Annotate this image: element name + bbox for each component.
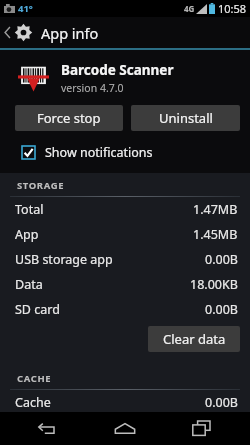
staticText: 0.00B <box>205 394 238 408</box>
button[interactable]: Home <box>96 412 154 445</box>
staticText: 4G <box>184 3 195 14</box>
button[interactable]: Clear data <box>148 326 240 352</box>
button[interactable]: SD card <box>0 297 250 322</box>
staticText: CACHE <box>17 372 52 385</box>
button[interactable]: Uninstall <box>131 105 240 131</box>
staticText: 10:58 <box>218 1 247 16</box>
button[interactable]: Recent apps <box>173 412 231 445</box>
staticText: 18.00KB <box>190 276 238 293</box>
button[interactable]: Show notifications <box>0 142 250 163</box>
staticText: Barcode Scanner <box>61 61 174 79</box>
button[interactable]: Back <box>0 17 250 48</box>
staticText: 1.47MB <box>193 201 238 218</box>
staticText: 0.00B <box>205 301 238 318</box>
staticText: App <box>15 226 39 243</box>
staticText: Total <box>15 201 44 218</box>
button[interactable]: Force stop <box>15 105 123 131</box>
button[interactable]: App <box>0 222 250 247</box>
staticText: version 4.7.0 <box>61 81 124 95</box>
staticText: Force stop <box>37 109 101 127</box>
button[interactable]: Back <box>19 412 77 445</box>
staticText: USB storage app <box>15 251 113 268</box>
staticText: SD card <box>15 301 60 318</box>
staticText: Data <box>15 276 43 293</box>
staticText: 0.00B <box>205 251 238 268</box>
other: Back <box>4 26 11 39</box>
staticText: STORAGE <box>17 179 65 192</box>
staticText: 1.45MB <box>193 226 238 243</box>
staticText: Uninstall <box>159 109 213 127</box>
button[interactable]: USB storage app <box>0 247 250 272</box>
button[interactable]: Cache <box>0 390 250 412</box>
staticText: 41° <box>18 2 33 15</box>
staticText: Show notifications <box>45 144 153 161</box>
staticText: Cache <box>15 394 51 408</box>
button[interactable]: Total <box>0 197 250 222</box>
staticText: App info <box>41 23 99 43</box>
staticText: Clear data <box>163 330 226 348</box>
button[interactable]: Data <box>0 272 250 297</box>
